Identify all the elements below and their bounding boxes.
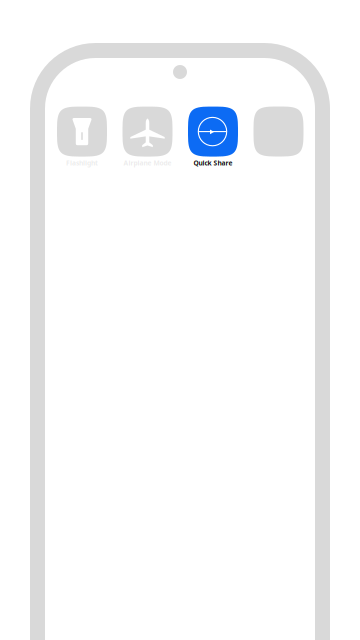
staticText: Flashlight xyxy=(66,159,98,167)
button[interactable]: Flashlight xyxy=(50,107,114,167)
button[interactable]: Quick Share xyxy=(181,107,245,167)
staticText: Quick Share xyxy=(193,159,232,167)
staticText: Airplane Mode xyxy=(123,159,171,167)
button[interactable]: More controls xyxy=(253,106,303,156)
button[interactable]: Airplane Mode xyxy=(115,107,179,167)
